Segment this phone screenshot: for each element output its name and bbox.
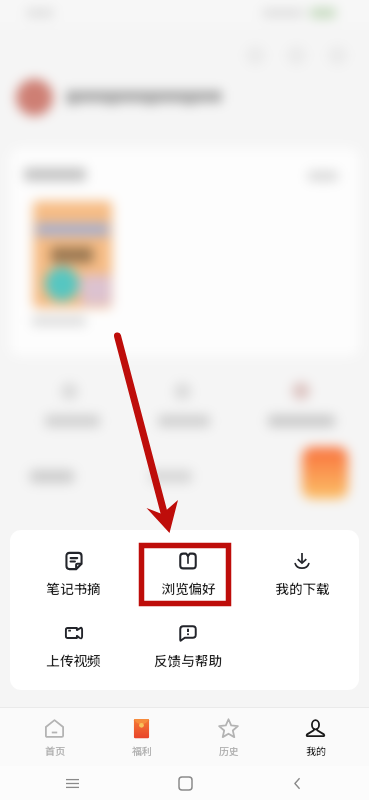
button[interactable]: 浏览偏好 [131,544,245,616]
button[interactable]: 上传视频 [16,616,131,688]
staticText: 历史 [219,743,239,757]
staticText: 浏览偏好 [161,578,216,598]
button[interactable]: 福利 [98,708,185,766]
button[interactable]: 反馈与帮助 [131,616,245,688]
staticText: 反馈与帮助 [154,650,222,670]
button[interactable]: 我的下载 [245,544,359,616]
button[interactable]: Back [285,771,309,795]
button[interactable]: 首页 [11,708,98,766]
button[interactable]: Recents [60,771,84,795]
staticText: 我的 [306,743,326,757]
button[interactable]: 我的 [272,708,359,766]
staticText: 上传视频 [46,650,101,670]
staticText: 笔记书摘 [46,578,101,598]
button[interactable]: Home [173,771,197,795]
button[interactable]: 笔记书摘 [16,544,131,616]
button[interactable]: 历史 [185,708,272,766]
staticText: 福利 [132,743,152,757]
staticText: 我的下载 [275,578,330,598]
staticText: 首页 [45,743,65,757]
